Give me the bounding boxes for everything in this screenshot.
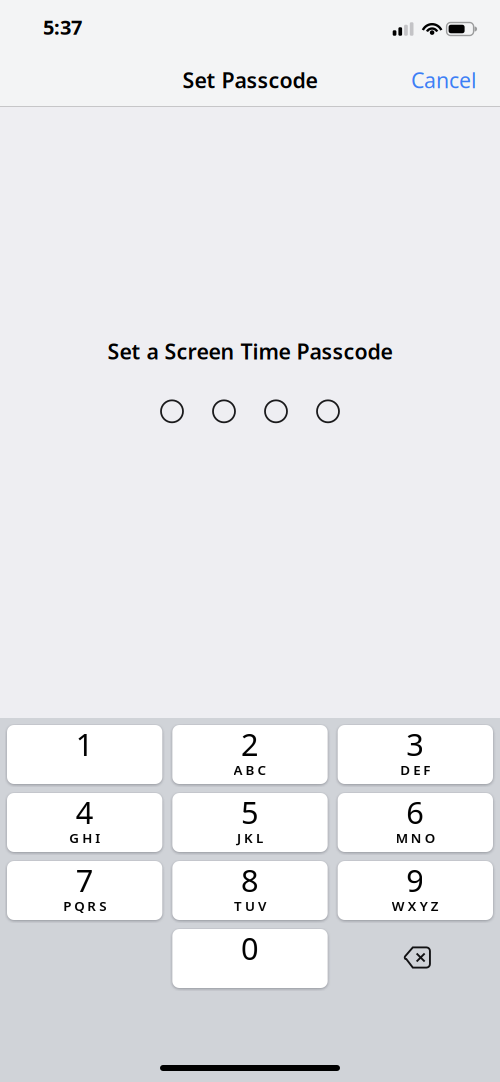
button[interactable]: 8 [172,861,328,920]
staticText: M N O [396,829,435,847]
button[interactable]: 5 [172,793,328,852]
button[interactable]: 4 [7,793,162,852]
button[interactable]: 7 [7,861,162,920]
staticText: Cancel [411,66,477,94]
button[interactable]: 3 [338,725,493,784]
staticText: T U V [234,897,266,915]
staticText: 5 [241,792,259,832]
staticText: P Q R S [63,897,106,915]
staticText: 6 [406,792,424,832]
staticText: 2 [241,724,259,764]
staticText: 4 [76,792,94,832]
staticText: G H I [69,829,100,847]
button[interactable]: Cancel [399,56,489,104]
staticText: 9 [406,860,424,900]
staticText: 5:37 [43,14,82,40]
button[interactable]: 1 [7,725,162,784]
staticText: 8 [241,860,259,900]
button[interactable]: 0 [172,929,328,988]
staticText: W X Y Z [392,897,439,915]
staticText: D E F [400,761,430,779]
button[interactable]: 6 [338,793,493,852]
staticText: 3 [406,724,424,764]
staticText: A B C [233,761,266,779]
staticText: 7 [76,860,94,900]
staticText: Set Passcode [182,66,317,94]
staticText: 0 [241,928,259,968]
button[interactable]: 9 [338,861,493,920]
staticText: Set a Screen Time Passcode [107,337,392,365]
staticText: 1 [76,724,94,764]
staticText: J K L [237,829,263,847]
button[interactable]: Delete [338,929,493,988]
button[interactable]: 2 [172,725,328,784]
